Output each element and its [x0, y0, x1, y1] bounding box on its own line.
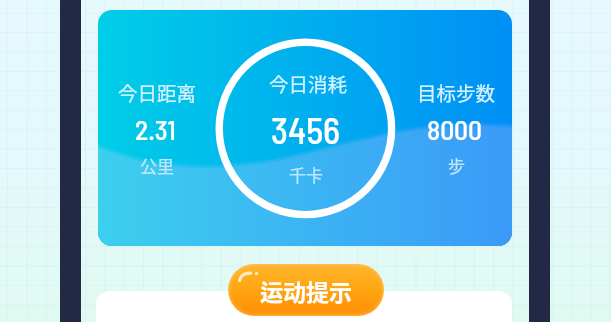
staticText: 公里 — [140, 153, 174, 178]
staticText: 3456 — [271, 108, 341, 151]
staticText: 今日距离 — [118, 78, 197, 106]
staticText: 8000 — [427, 112, 482, 145]
staticText: 2.31 — [135, 112, 176, 145]
staticText: 步 — [448, 153, 465, 178]
staticText: 千卡 — [289, 162, 323, 187]
button[interactable] — [98, 10, 512, 246]
staticText: 目标步数 — [417, 78, 496, 106]
staticText: 运动提示 — [260, 274, 352, 307]
staticText: 今日消耗 — [269, 69, 348, 97]
button[interactable]: 运动提示 — [228, 264, 384, 316]
